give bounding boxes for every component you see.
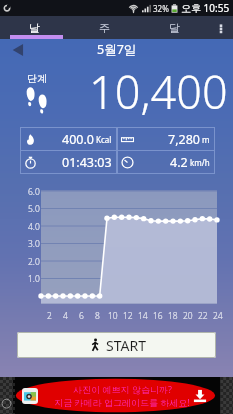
staticText: 단계 — [27, 72, 47, 85]
staticText: 4.2 — [170, 154, 188, 171]
button[interactable]: More options — [209, 16, 233, 39]
staticText: Kcal — [96, 134, 112, 145]
button[interactable]: 주 — [69, 16, 139, 39]
staticText: m — [202, 134, 210, 145]
staticText: 6.0 — [28, 186, 40, 198]
staticText: 5.0 — [28, 203, 40, 215]
staticText: 5월7일 — [97, 41, 137, 58]
staticText: 10,400 — [89, 61, 228, 122]
staticText: 22 — [198, 310, 208, 322]
staticText: 7,280 — [168, 131, 200, 148]
button[interactable]: 7,280 — [121, 127, 210, 151]
button[interactable]: 날 — [0, 16, 69, 39]
staticText: 10 — [108, 310, 118, 322]
staticText: 8 — [95, 310, 100, 322]
button[interactable]: START — [17, 332, 216, 358]
button[interactable]: Previous day — [7, 39, 29, 60]
button[interactable]: 400.0 — [24, 127, 112, 151]
staticText: 16 — [153, 310, 163, 322]
staticText: 사진이 예쁘지 않습니까? — [73, 383, 172, 395]
button[interactable]: 01:43:03 — [24, 150, 112, 174]
staticText: 2.0 — [28, 256, 40, 268]
staticText: 24 — [213, 310, 223, 322]
staticText: 오후 10:55 — [181, 1, 230, 15]
staticText: 18 — [168, 310, 178, 322]
button[interactable]: 4.2 — [121, 150, 210, 174]
staticText: 날 — [29, 21, 40, 35]
button[interactable]: Advertisement — [0, 377, 233, 414]
button[interactable]: 달 — [139, 16, 209, 39]
staticText: 14 — [138, 310, 148, 322]
staticText: 12 — [123, 310, 133, 322]
staticText: 32% — [153, 3, 169, 14]
staticText: 01:43:03 — [62, 154, 112, 171]
staticText: 2 — [47, 310, 52, 322]
staticText: 400.0 — [62, 131, 94, 148]
staticText: 주 — [99, 21, 110, 35]
staticText: km/h — [190, 157, 210, 168]
staticText: START — [106, 336, 146, 355]
staticText: 3.0 — [28, 238, 40, 250]
staticText: 20 — [183, 310, 193, 322]
staticText: 지금 카메라 업그레이드를 하세요! — [54, 396, 190, 408]
staticText: 4.0 — [28, 221, 40, 233]
staticText: 6 — [79, 310, 84, 322]
staticText: 4 — [63, 310, 68, 322]
staticText: 달 — [169, 21, 180, 35]
staticText: 1.0 — [28, 273, 40, 285]
